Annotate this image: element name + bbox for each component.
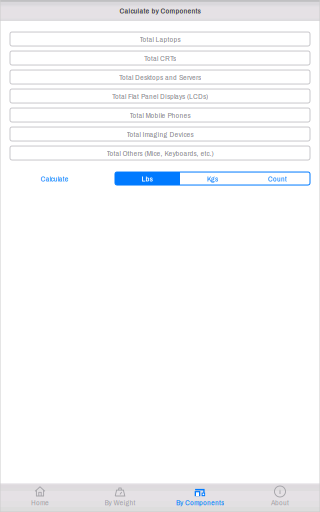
staticText: Total Imaging Devices — [126, 129, 193, 139]
staticText: Total CRTs — [144, 53, 176, 63]
staticText: Lbs — [141, 173, 153, 184]
staticText: Total Others (Mice, Keyboards, etc.) — [106, 148, 213, 158]
staticText: About — [271, 497, 289, 508]
button[interactable]: Total CRTs — [10, 51, 310, 65]
button[interactable]: Home — [0, 483, 80, 512]
button[interactable]: About — [240, 483, 320, 512]
button[interactable]: Total Others (Mice, Keyboards, etc.) — [10, 146, 310, 160]
button[interactable]: By Weight — [80, 483, 160, 512]
staticText: Total Laptops — [139, 34, 180, 44]
button[interactable]: By Components — [160, 483, 240, 512]
button[interactable]: Total Mobile Phones — [10, 108, 310, 122]
button[interactable]: Total Desktops and Servers — [10, 70, 310, 84]
staticText: Kgs — [207, 173, 218, 184]
button[interactable]: Kgs — [180, 172, 245, 185]
staticText: By Weight — [104, 497, 135, 508]
staticText: By Components — [176, 497, 224, 508]
staticText: Total Desktops and Servers — [119, 72, 201, 82]
button[interactable]: Count — [245, 172, 310, 185]
staticText: Calculate — [40, 173, 68, 184]
button[interactable]: Lbs — [115, 172, 180, 185]
button[interactable]: Total Imaging Devices — [10, 127, 310, 141]
staticText: Total Mobile Phones — [129, 110, 190, 120]
button[interactable]: Total Laptops — [10, 32, 310, 46]
staticText: Count — [268, 173, 287, 184]
button[interactable]: Calculate — [24, 172, 85, 185]
staticText: Total Flat Panel Displays (LCDs) — [112, 91, 208, 101]
staticText: Home — [31, 497, 49, 508]
staticText: Calculate by Components — [119, 5, 200, 16]
button[interactable]: Total Flat Panel Displays (LCDs) — [10, 89, 310, 103]
